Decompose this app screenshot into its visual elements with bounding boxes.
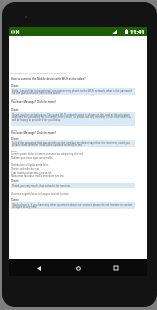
staticText: Nullam quis risus eget urna mollis.	[11, 156, 54, 160]
staticText: Cras mattis consectetur purus sit.	[11, 171, 52, 175]
staticText: Client:	[11, 137, 20, 140]
button[interactable]: Back	[31, 260, 47, 276]
staticText: reply	[11, 128, 17, 131]
staticText: Lorem ipsum dolor sit amet, consectetur …	[11, 152, 84, 156]
button[interactable]: Recent apps	[108, 260, 124, 276]
staticText: Maecenas faucibus mollis interdum nec le…	[11, 174, 65, 178]
staticText: You have Message? Click for more?	[11, 131, 57, 135]
staticText: Client:	[11, 84, 20, 87]
staticText: 11:41	[130, 28, 145, 36]
staticText: Vestibulum id ligula porta felis.	[11, 163, 49, 167]
staticText: Glad to hear it, if you have any other q…	[12, 203, 134, 209]
staticText: How to connect the Mobile device with Wi…	[11, 77, 86, 81]
staticText: Requirements, Terms of Service & Privacy	[11, 71, 60, 74]
staticText: I tried the password that was written on…	[12, 141, 134, 147]
staticText: Thank you very much, that solved it for …	[12, 184, 71, 188]
staticText: reply	[11, 97, 17, 100]
staticText: Thank you for contacting us. The guest W…	[12, 113, 134, 122]
staticText: Hello, I would like to know how I can co…	[12, 89, 134, 95]
staticText: Client:	[11, 179, 20, 182]
button[interactable]: Home	[70, 260, 86, 276]
staticText: You have Message? Click for more?	[11, 100, 57, 104]
staticText: FAQ	[61, 71, 66, 74]
staticText: reply	[11, 149, 17, 152]
staticText: Donec sed odio dui nisi.	[11, 167, 40, 171]
staticText: Vivamus sagittis lacus vel augue laoreet…	[11, 192, 70, 196]
staticText: Client:	[11, 108, 20, 111]
staticText: Client:	[11, 198, 20, 201]
